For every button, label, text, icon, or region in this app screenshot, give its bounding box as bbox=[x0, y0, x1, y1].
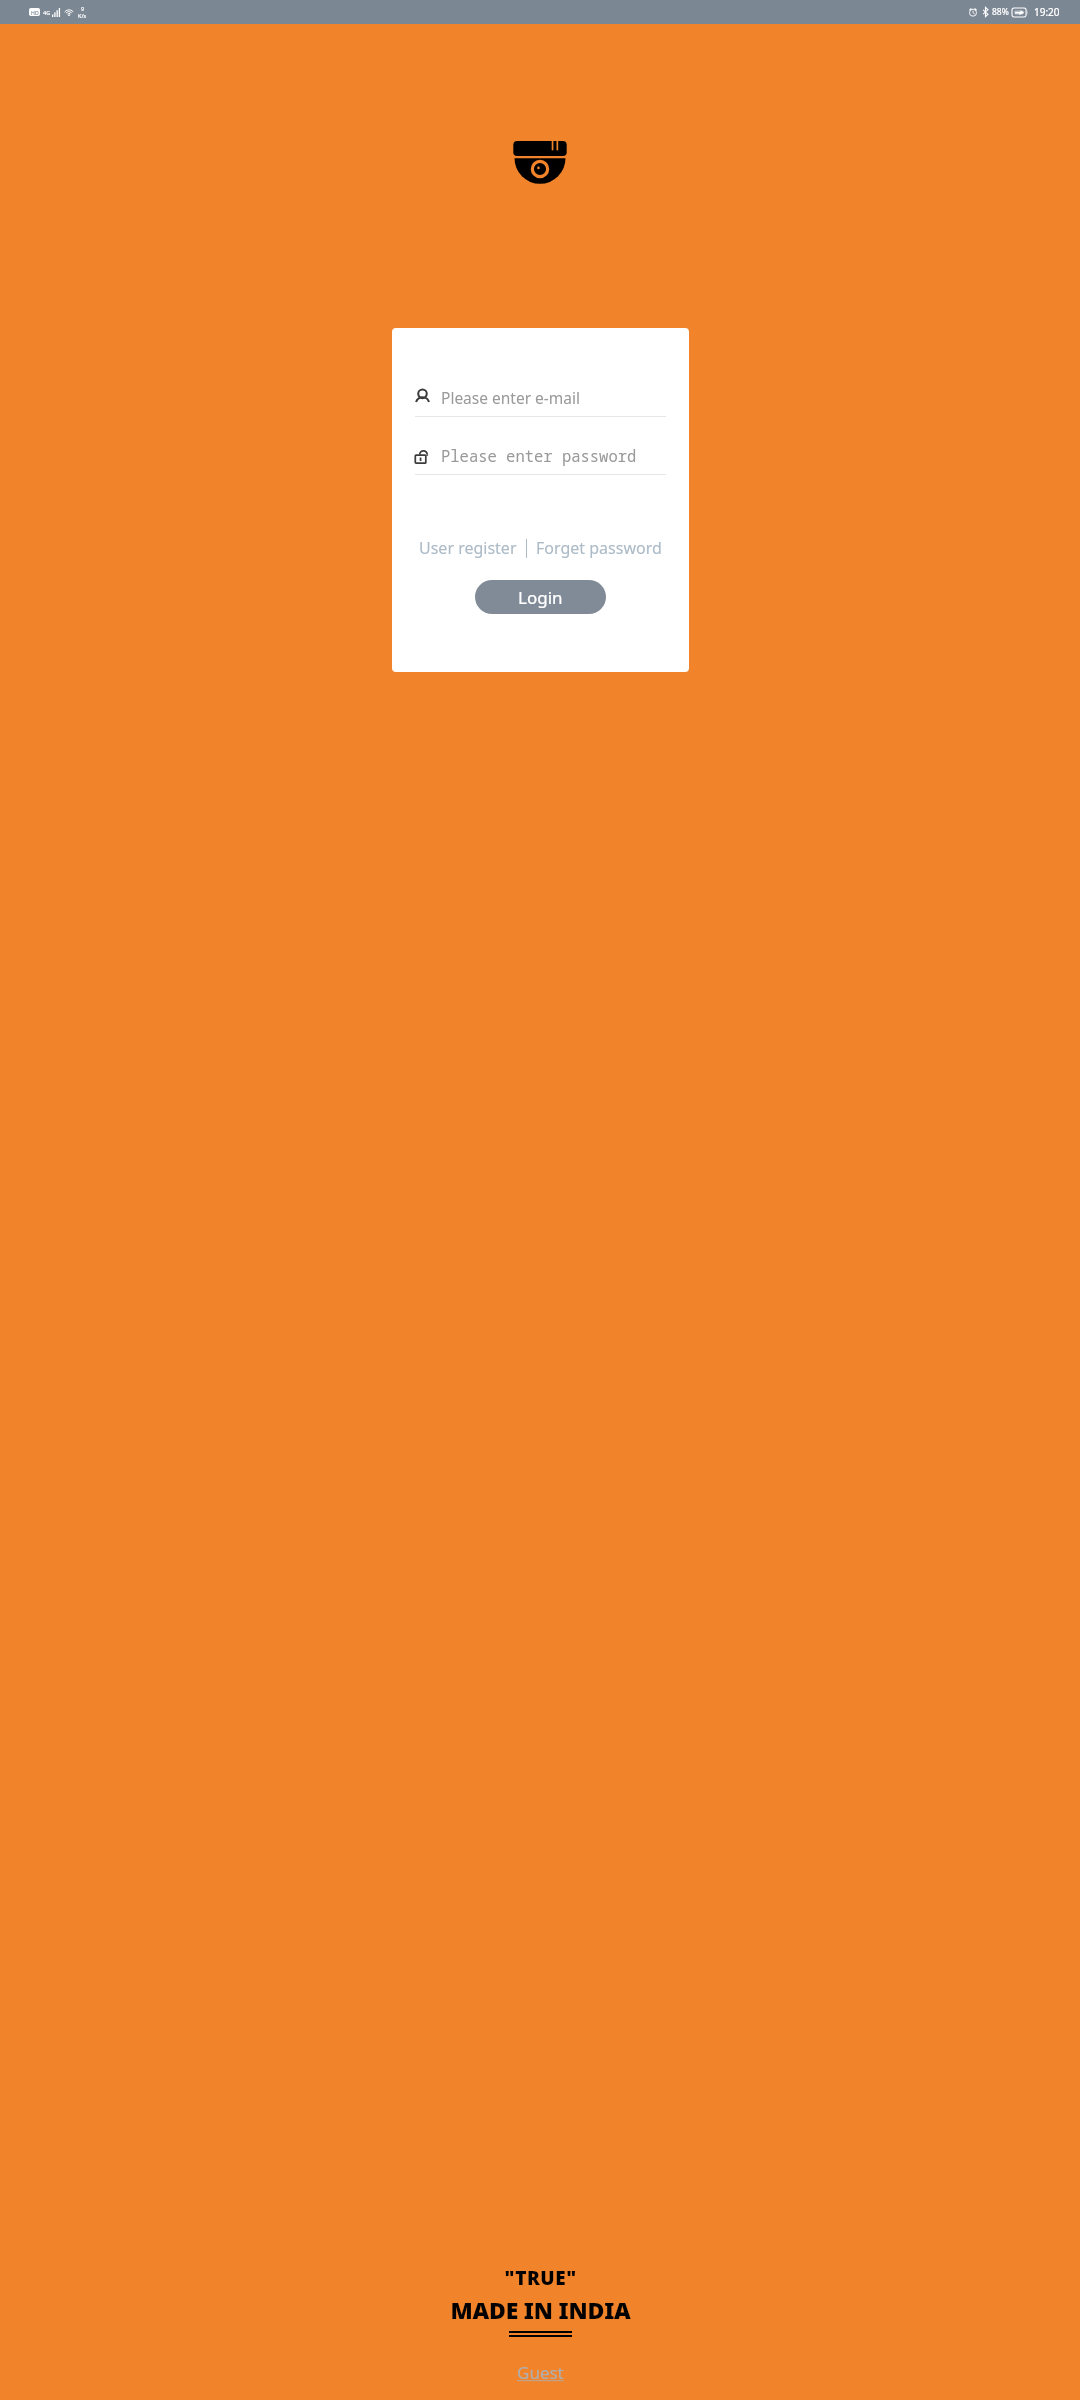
staticText: Forget password bbox=[536, 537, 662, 559]
staticText: 9 bbox=[81, 5, 85, 12]
staticText: 4G bbox=[43, 9, 51, 16]
button[interactable]: User register bbox=[417, 537, 519, 559]
staticText: Login bbox=[518, 586, 563, 609]
staticText: 88% bbox=[992, 6, 1009, 18]
staticText: Guest bbox=[517, 2361, 564, 2384]
staticText: MADE IN INDIA bbox=[450, 2294, 631, 2325]
staticText: User register bbox=[419, 537, 517, 559]
staticText: Please enter e-mail bbox=[441, 387, 581, 408]
staticText: HD bbox=[31, 9, 39, 16]
button[interactable]: Please enter e-mail bbox=[415, 379, 666, 416]
other: Camera logo bbox=[510, 141, 570, 192]
staticText: "TRUE" bbox=[504, 2265, 577, 2291]
staticText: Please enter password bbox=[441, 445, 637, 466]
staticText: 19:20 bbox=[1034, 5, 1060, 19]
button[interactable]: Guest bbox=[511, 2359, 570, 2386]
button[interactable]: Login bbox=[475, 580, 606, 614]
button[interactable]: Please enter password bbox=[415, 437, 666, 474]
staticText: K/s bbox=[78, 12, 87, 19]
button[interactable]: Forget password bbox=[534, 537, 664, 559]
